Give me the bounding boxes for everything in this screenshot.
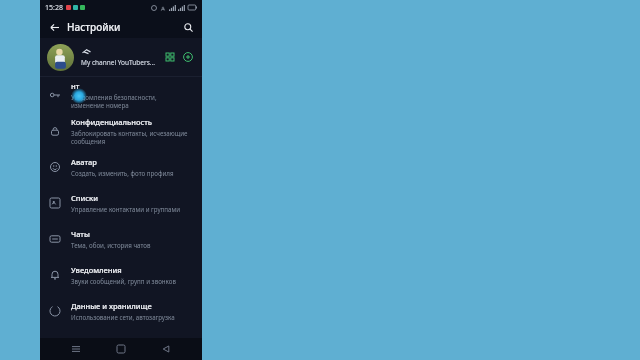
staticText: нт <box>71 81 80 91</box>
staticText: Чаты <box>71 229 90 239</box>
button[interactable]: Конфиденциальность <box>40 113 202 149</box>
button[interactable]: Поиск <box>180 19 196 35</box>
button[interactable]: Аватар <box>40 149 202 185</box>
button[interactable]: Добавить <box>181 50 195 64</box>
staticText: Уведомления <box>71 265 122 275</box>
staticText: Заблокировать контакты, исчезающие сообщ… <box>71 129 188 145</box>
staticText: Звуки сообщений, групп и звонков <box>71 277 176 285</box>
staticText: 15:28 <box>45 3 63 13</box>
button[interactable]: Чаты <box>40 221 202 257</box>
staticText: Создать, изменить, фото профиля <box>71 169 174 177</box>
button[interactable]: Уведомления <box>40 257 202 293</box>
button[interactable]: Списки <box>40 185 202 221</box>
button[interactable]: Назад <box>46 19 62 35</box>
staticText: Аватар <box>71 157 97 167</box>
button[interactable]: Меню <box>67 340 85 358</box>
button[interactable]: Назад <box>157 340 175 358</box>
staticText: Списки <box>71 193 98 203</box>
staticText: Конфиденциальность <box>71 117 153 127</box>
staticText: Использование сети, автозагрузка <box>71 313 175 321</box>
button[interactable]: Последние приложения <box>112 340 130 358</box>
staticText: My channel YouTubers... <box>81 58 156 67</box>
button[interactable]: My channel YouTubers... <box>40 38 202 76</box>
staticText: Настройки <box>67 20 121 34</box>
button[interactable]: QR-код <box>163 50 177 64</box>
button[interactable]: Данные и хранилище <box>40 293 202 329</box>
staticText: Уведомления безопасности, изменение номе… <box>71 93 157 109</box>
button[interactable]: нт <box>40 77 202 113</box>
staticText: Тема, обои, история чатов <box>71 241 151 249</box>
staticText: Управление контактами и группами <box>71 205 181 213</box>
staticText: Данные и хранилище <box>71 301 152 311</box>
